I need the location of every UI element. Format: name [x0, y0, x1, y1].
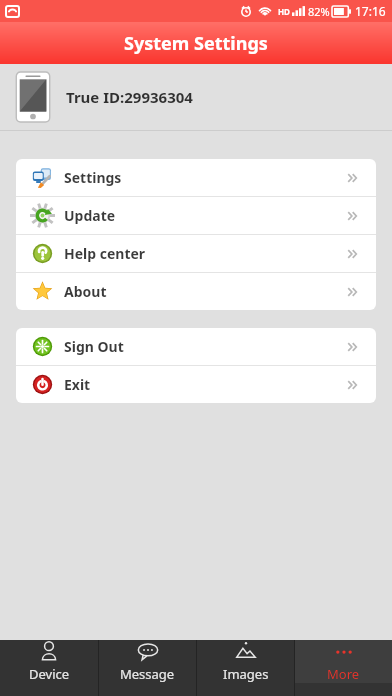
- staticText: Device: [29, 665, 70, 683]
- staticText: Help center: [64, 244, 146, 263]
- staticText: True ID:29936304: [66, 87, 193, 107]
- staticText: System Settings: [124, 31, 268, 56]
- staticText: 82%: [308, 4, 330, 19]
- staticText: Images: [223, 665, 269, 683]
- button[interactable]: Sign Out: [16, 328, 376, 365]
- staticText: Settings: [64, 168, 122, 187]
- button[interactable]: Message: [99, 640, 196, 683]
- button[interactable]: About: [16, 273, 376, 310]
- button[interactable]: Settings: [16, 159, 376, 196]
- button[interactable]: Exit: [16, 366, 376, 403]
- button[interactable]: Device: [0, 640, 98, 683]
- staticText: Exit: [64, 375, 91, 394]
- staticText: Message: [120, 665, 175, 683]
- staticText: HD: [278, 6, 290, 17]
- button[interactable]: Images: [197, 640, 294, 683]
- button[interactable]: Help center: [16, 235, 376, 272]
- staticText: 17:16: [355, 3, 386, 19]
- staticText: More: [327, 665, 360, 683]
- staticText: Update: [64, 206, 116, 225]
- staticText: Sign Out: [64, 337, 124, 356]
- staticText: About: [64, 282, 107, 301]
- button[interactable]: Update: [16, 197, 376, 234]
- button[interactable]: More: [295, 640, 392, 683]
